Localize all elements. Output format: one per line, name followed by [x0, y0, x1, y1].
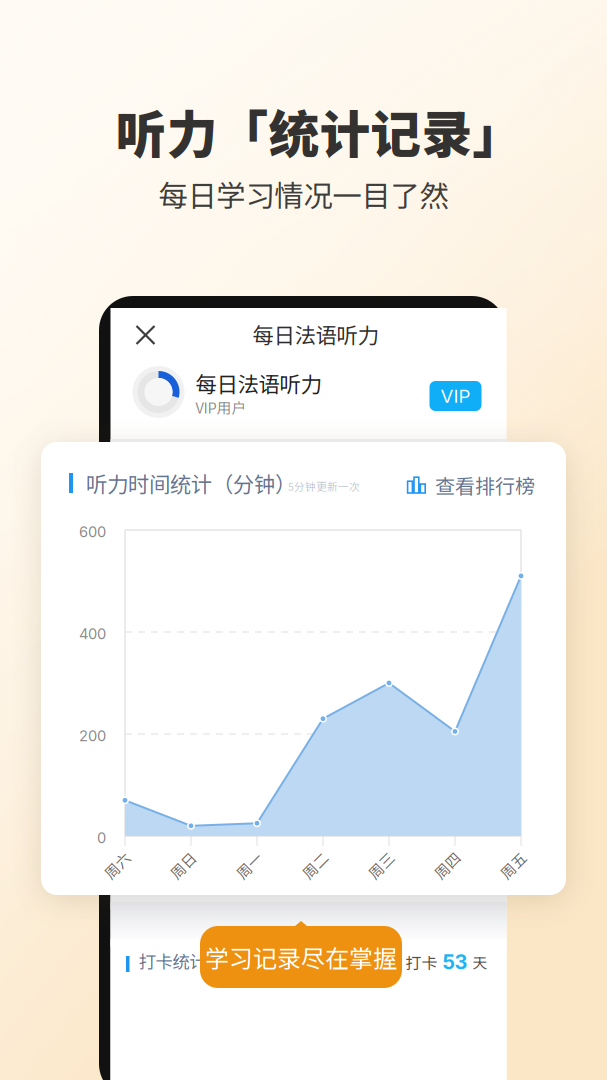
staticText: 每日法语听力 [195, 368, 321, 398]
staticText: 0 [97, 829, 106, 847]
staticText: 5分钟更新一次 [288, 478, 360, 494]
staticText: 周四 [432, 854, 462, 876]
staticText: 打卡统计 [138, 948, 206, 974]
staticText: 周一 [234, 854, 264, 876]
staticText: 学习记录尽在掌握 [205, 940, 397, 974]
staticText: 周日 [168, 854, 198, 876]
staticText: 每日法语听力 [252, 319, 378, 349]
staticText: 周五 [498, 854, 528, 876]
button[interactable]: VIP [429, 381, 481, 411]
staticText: 打卡 [405, 950, 437, 974]
staticText: 400 [79, 625, 106, 643]
staticText: 600 [79, 523, 106, 541]
staticText: 周三 [366, 854, 396, 876]
staticText: VIP用户 [195, 396, 246, 418]
staticText: VIP [440, 385, 470, 407]
staticText: 200 [79, 727, 106, 745]
staticText: 天 [472, 951, 487, 973]
staticText: 周六 [102, 854, 132, 876]
staticText: 查看排行榜 [435, 470, 535, 499]
button[interactable]: Close [124, 314, 166, 356]
staticText: 53 [437, 950, 472, 974]
staticText: 听力「统计记录」 [115, 94, 523, 168]
staticText: 周二 [300, 854, 330, 876]
button[interactable]: 查看排行榜 [407, 472, 535, 498]
staticText: 每日学习情况一目了然 [158, 173, 448, 215]
staticText: 听力时间统计（分钟） [86, 468, 296, 498]
